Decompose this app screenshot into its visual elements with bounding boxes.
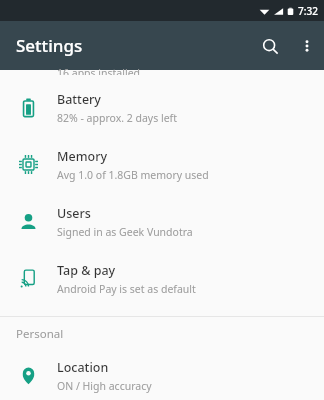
- button[interactable]: Battery: [0, 79, 324, 136]
- staticText: 7:32: [298, 4, 318, 18]
- staticText: 16 apps installed: [57, 66, 141, 75]
- staticText: Android Pay is set as default: [57, 282, 196, 296]
- button[interactable]: More options: [290, 29, 324, 63]
- staticText: Settings: [16, 34, 83, 57]
- staticText: Signed in as Geek Vundotra: [57, 225, 193, 239]
- staticText: Personal: [16, 326, 64, 342]
- staticText: Avg 1.0 of 1.8GB memory used: [57, 168, 209, 182]
- staticText: Location: [57, 359, 109, 376]
- button[interactable]: Users: [0, 193, 324, 250]
- button[interactable]: Search: [250, 26, 290, 66]
- staticText: Memory: [57, 148, 108, 165]
- staticText: Battery: [57, 91, 101, 108]
- button[interactable]: Memory: [0, 136, 324, 193]
- staticText: 82% - approx. 2 days left: [57, 111, 177, 125]
- staticText: ON / High accuracy: [57, 379, 152, 393]
- staticText: Users: [57, 205, 91, 222]
- button[interactable]: Tap & pay: [0, 250, 324, 307]
- button[interactable]: Location: [0, 351, 324, 400]
- staticText: Tap & pay: [57, 262, 116, 279]
